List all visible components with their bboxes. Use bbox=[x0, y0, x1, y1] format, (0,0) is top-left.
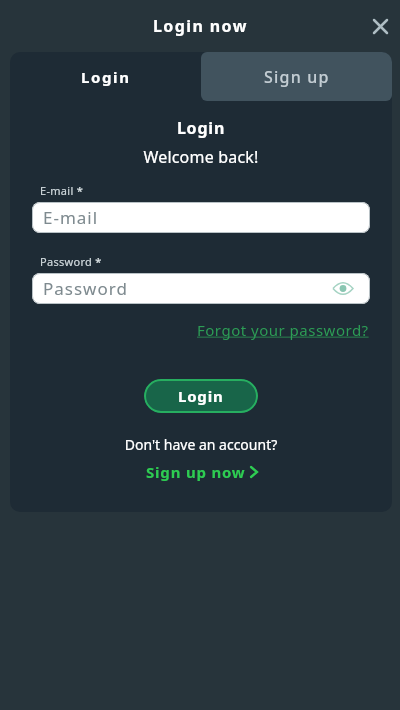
button[interactable]: Forgot your password? bbox=[197, 320, 369, 340]
button[interactable]: Password bbox=[32, 273, 370, 304]
staticText: Password * bbox=[40, 254, 102, 269]
staticText: Login bbox=[10, 117, 392, 139]
staticText: Sign up bbox=[264, 66, 330, 88]
button[interactable]: Login bbox=[144, 379, 258, 413]
staticText: Login now bbox=[153, 15, 248, 37]
button[interactable]: Sign up bbox=[201, 52, 392, 101]
staticText: Password bbox=[43, 277, 128, 300]
staticText: Sign up now bbox=[146, 462, 246, 482]
button[interactable]: Login bbox=[10, 52, 201, 101]
staticText: E-mail bbox=[43, 206, 99, 229]
staticText: Welcome back! bbox=[10, 146, 392, 168]
staticText: Login bbox=[178, 386, 224, 406]
staticText: Don't have an account? bbox=[10, 435, 392, 454]
staticText: Login bbox=[81, 67, 131, 87]
button[interactable] bbox=[366, 12, 394, 40]
staticText: E-mail * bbox=[40, 183, 84, 198]
button[interactable]: E-mail bbox=[32, 202, 370, 233]
button[interactable]: Sign up now bbox=[146, 462, 257, 482]
